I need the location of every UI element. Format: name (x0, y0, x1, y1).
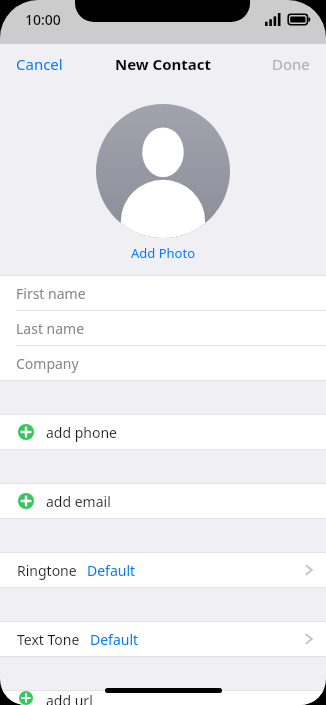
button[interactable]: Add Photo (119, 242, 207, 264)
staticText: add url (46, 691, 93, 705)
staticText: New Contact (115, 54, 212, 74)
button[interactable]: add email (0, 484, 326, 518)
button[interactable]: Text Tone (0, 622, 326, 656)
staticText: 10:00 (25, 10, 61, 29)
button[interactable]: Cancel (0, 46, 79, 82)
button[interactable]: Ringtone (0, 553, 326, 587)
button[interactable]: First name (0, 276, 326, 310)
staticText: Done (272, 54, 310, 74)
staticText: First name (16, 284, 86, 303)
button[interactable]: add phone (0, 415, 326, 449)
staticText: add phone (46, 423, 117, 442)
button[interactable]: Done (256, 46, 326, 82)
button[interactable]: add url (0, 691, 326, 705)
staticText: Add Photo (131, 244, 195, 262)
staticText: Cancel (16, 54, 63, 74)
staticText: add email (46, 492, 111, 511)
staticText: Default (87, 561, 136, 580)
button[interactable]: Add Photo (96, 104, 230, 238)
button[interactable]: Company (0, 346, 326, 380)
button[interactable]: Last name (0, 311, 326, 345)
staticText: Ringtone (17, 561, 77, 580)
staticText: Default (90, 630, 139, 649)
staticText: Last name (16, 319, 85, 338)
staticText: Text Tone (17, 630, 80, 649)
staticText: Company (16, 354, 79, 373)
